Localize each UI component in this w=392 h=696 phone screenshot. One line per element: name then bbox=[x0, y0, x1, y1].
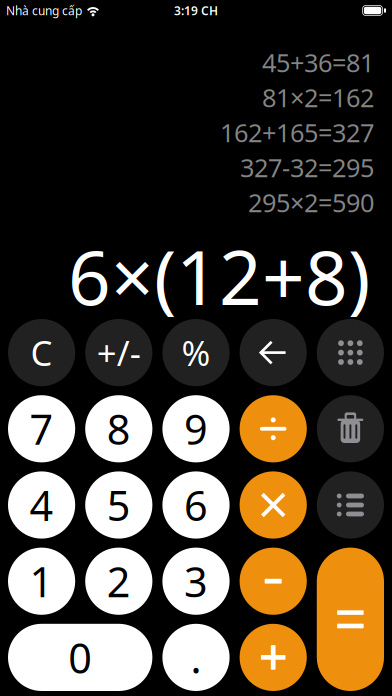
staticText: 1 bbox=[30, 554, 54, 609]
button[interactable]: 7 bbox=[8, 395, 75, 462]
staticText: 3:19 CH bbox=[174, 2, 218, 18]
button[interactable]: 2 bbox=[85, 548, 152, 615]
button[interactable]: Minus bbox=[240, 548, 307, 615]
staticText: C bbox=[31, 330, 53, 376]
button[interactable]: Keypad options bbox=[317, 319, 384, 386]
button[interactable]: Plus bbox=[240, 624, 307, 691]
staticText: 0 bbox=[68, 630, 92, 685]
staticText: 4 bbox=[30, 478, 54, 532]
staticText: 6×(12+8) bbox=[68, 226, 370, 326]
button[interactable]: Equals bbox=[317, 548, 384, 691]
staticText: 5 bbox=[107, 478, 131, 532]
button[interactable]: C bbox=[8, 319, 75, 386]
staticText: 2 bbox=[107, 554, 131, 609]
staticText: % bbox=[181, 330, 210, 376]
button[interactable]: 0 bbox=[8, 624, 152, 691]
button[interactable]: 5 bbox=[85, 471, 152, 539]
staticText: 45+36=81 bbox=[262, 46, 374, 79]
staticText: 3 bbox=[184, 554, 208, 609]
staticText: 327-32=295 bbox=[240, 151, 374, 184]
staticText: Nhà cung cấp bbox=[6, 2, 82, 18]
button[interactable]: % bbox=[162, 319, 230, 386]
button[interactable]: . bbox=[162, 624, 230, 691]
button[interactable]: 1 bbox=[8, 548, 75, 615]
button[interactable]: 8 bbox=[85, 395, 152, 462]
staticText: +/- bbox=[97, 330, 141, 376]
button[interactable]: 3 bbox=[162, 548, 230, 615]
button[interactable]: 4 bbox=[8, 471, 75, 539]
button[interactable]: Multiply bbox=[240, 471, 307, 539]
staticText: 9 bbox=[184, 401, 208, 456]
staticText: . bbox=[190, 630, 201, 685]
staticText: 81×2=162 bbox=[262, 81, 374, 114]
button[interactable]: 6 bbox=[162, 471, 230, 539]
staticText: 6 bbox=[184, 478, 208, 532]
button[interactable]: +/- bbox=[85, 319, 152, 386]
staticText: 8 bbox=[107, 401, 131, 456]
button[interactable]: History bbox=[317, 471, 384, 539]
staticText: 162+165=327 bbox=[220, 116, 374, 149]
staticText: 295×2=590 bbox=[248, 186, 374, 219]
button[interactable]: Divide bbox=[240, 395, 307, 462]
button[interactable]: 9 bbox=[162, 395, 230, 462]
button[interactable]: Clear history bbox=[317, 395, 384, 462]
staticText: 7 bbox=[30, 401, 54, 456]
button[interactable]: Backspace bbox=[240, 319, 307, 386]
